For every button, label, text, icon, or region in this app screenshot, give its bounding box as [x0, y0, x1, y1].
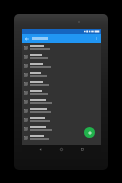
button[interactable] [22, 115, 101, 124]
button[interactable]: Back [34, 145, 47, 153]
button[interactable] [22, 70, 101, 79]
button[interactable]: Recent apps [76, 145, 89, 153]
button[interactable] [22, 133, 101, 142]
button[interactable] [22, 79, 101, 88]
button[interactable] [22, 61, 101, 70]
button[interactable]: More options [93, 35, 100, 42]
button[interactable]: Home [55, 145, 68, 153]
button[interactable] [22, 97, 101, 106]
button[interactable] [22, 124, 101, 133]
button[interactable] [22, 106, 101, 115]
button[interactable] [22, 88, 101, 97]
button[interactable] [22, 52, 101, 61]
button[interactable] [22, 43, 101, 52]
button[interactable]: Navigate up [23, 35, 30, 42]
button[interactable]: Add [84, 127, 95, 138]
